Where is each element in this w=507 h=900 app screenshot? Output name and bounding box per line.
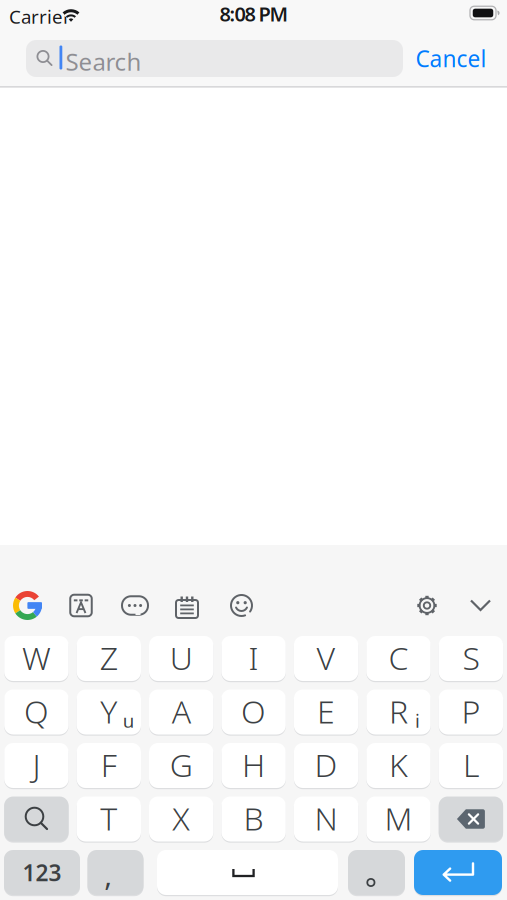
staticText: Q (24, 690, 49, 732)
button[interactable]: R (366, 688, 431, 736)
staticText: S (462, 636, 479, 679)
staticText: Z (100, 636, 118, 679)
button[interactable]: Period (348, 848, 405, 896)
button[interactable]: C (366, 634, 431, 682)
button[interactable]: Hide keyboard (470, 599, 491, 611)
button[interactable]: P (439, 688, 503, 736)
staticText: Search (65, 45, 141, 77)
button[interactable]: U (149, 634, 213, 682)
button[interactable]: M (366, 795, 431, 843)
button[interactable]: Cancel (415, 43, 486, 73)
button[interactable]: X (149, 795, 213, 843)
button[interactable]: E (294, 688, 358, 736)
staticText: T (100, 797, 117, 839)
button[interactable]: D (294, 741, 358, 789)
button[interactable]: F (77, 741, 141, 789)
staticText: H (242, 743, 265, 786)
staticText: I (249, 636, 259, 679)
button[interactable]: Z (77, 634, 141, 682)
staticText: Cancel (415, 43, 486, 73)
button[interactable]: S (439, 634, 503, 682)
staticText: P (461, 690, 480, 732)
button[interactable]: Numbers (4, 848, 80, 896)
staticText: C (388, 636, 408, 679)
button[interactable]: G (149, 741, 213, 789)
staticText: X (172, 797, 190, 839)
button[interactable]: T (77, 795, 141, 843)
staticText: L (463, 743, 479, 786)
button[interactable]: V (294, 634, 358, 682)
staticText: Y (100, 690, 117, 732)
button[interactable]: Delete (439, 795, 503, 843)
staticText: M (384, 797, 412, 839)
button[interactable]: Google search (12, 590, 42, 620)
staticText: V (317, 636, 336, 679)
button[interactable]: O (221, 688, 286, 736)
staticText: W (22, 636, 51, 679)
button[interactable]: Settings (416, 594, 438, 616)
staticText: J (32, 743, 40, 786)
staticText: 8:08 PM (219, 0, 288, 27)
button[interactable]: A (149, 688, 213, 736)
button[interactable]: N (294, 795, 358, 843)
button[interactable]: Q (4, 688, 69, 736)
staticText: B (244, 797, 264, 839)
button[interactable]: Emoji (230, 594, 253, 617)
staticText: 123 (22, 857, 61, 887)
staticText: O (241, 690, 266, 732)
button[interactable]: H (221, 741, 286, 789)
staticText: G (170, 743, 193, 786)
button[interactable]: Text tools (70, 595, 92, 616)
button[interactable]: Clipboard (176, 595, 198, 616)
button[interactable]: J (4, 741, 69, 789)
staticText: N (315, 797, 338, 839)
staticText: , (104, 855, 112, 894)
staticText: i (415, 708, 420, 733)
staticText: D (315, 743, 338, 786)
staticText: F (101, 743, 117, 786)
button[interactable]: Return (414, 848, 502, 896)
button[interactable]: Stickers (122, 595, 148, 615)
button[interactable]: W (4, 634, 69, 682)
staticText: u (123, 708, 135, 733)
staticText: Carrier (9, 4, 71, 29)
button[interactable]: Space (157, 848, 338, 896)
button[interactable]: I (221, 634, 286, 682)
staticText: E (317, 690, 335, 732)
staticText: U (170, 636, 193, 679)
button[interactable]: L (439, 741, 503, 789)
button[interactable]: Y (77, 688, 141, 736)
button[interactable]: Search (4, 795, 69, 843)
staticText: K (389, 743, 408, 786)
staticText: A (172, 690, 191, 732)
button[interactable]: B (221, 795, 286, 843)
button[interactable]: Search (26, 40, 403, 77)
button[interactable]: K (366, 741, 431, 789)
staticText: R (389, 690, 408, 732)
button[interactable]: Comma (87, 848, 143, 896)
